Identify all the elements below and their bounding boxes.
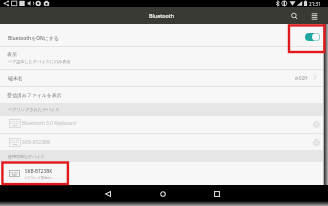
staticText: 21:31 [309,1,321,7]
staticText: ペアとして登録中… [24,175,54,180]
staticText: ペア設定したデバイスにのみ表示 [8,59,71,64]
button[interactable]: Bluetooth 3.0 Keyboard [0,115,328,132]
staticText: d-02H [295,75,308,81]
button[interactable]: BluetoothをONにする [0,24,328,46]
staticText: 受信済みファイルを表示 [7,92,62,98]
staticText: Bluetooth [149,12,175,19]
staticText: Bluetooth 3.0 Keyboard [22,120,76,127]
staticText: 端末名 [8,75,23,81]
button[interactable]: Search [286,8,302,24]
button[interactable]: More options [306,8,322,24]
button[interactable]: 受信済みファイルを表示 [0,87,328,102]
button[interactable]: 表示 [0,47,328,70]
staticText: 表示 [7,51,17,57]
button[interactable]: SKB-BT23BK [0,162,328,185]
staticText: BluetoothをONにする [8,35,59,42]
button[interactable]: Device settings [311,119,321,129]
button[interactable]: Back [87,186,128,201]
staticText: SKB-BT23BK [25,168,53,174]
staticText: 使用可能なデバイス [8,154,45,159]
button[interactable]: Home [142,186,183,201]
button[interactable]: Device settings [311,137,321,147]
button[interactable]: Recent apps [196,186,237,201]
button[interactable]: SKB-BT23BK [0,134,328,150]
staticText: SKB-BT23BK [22,139,51,146]
staticText: ペアリングされたデバイス [8,107,60,112]
button[interactable]: 端末名 [0,70,328,86]
